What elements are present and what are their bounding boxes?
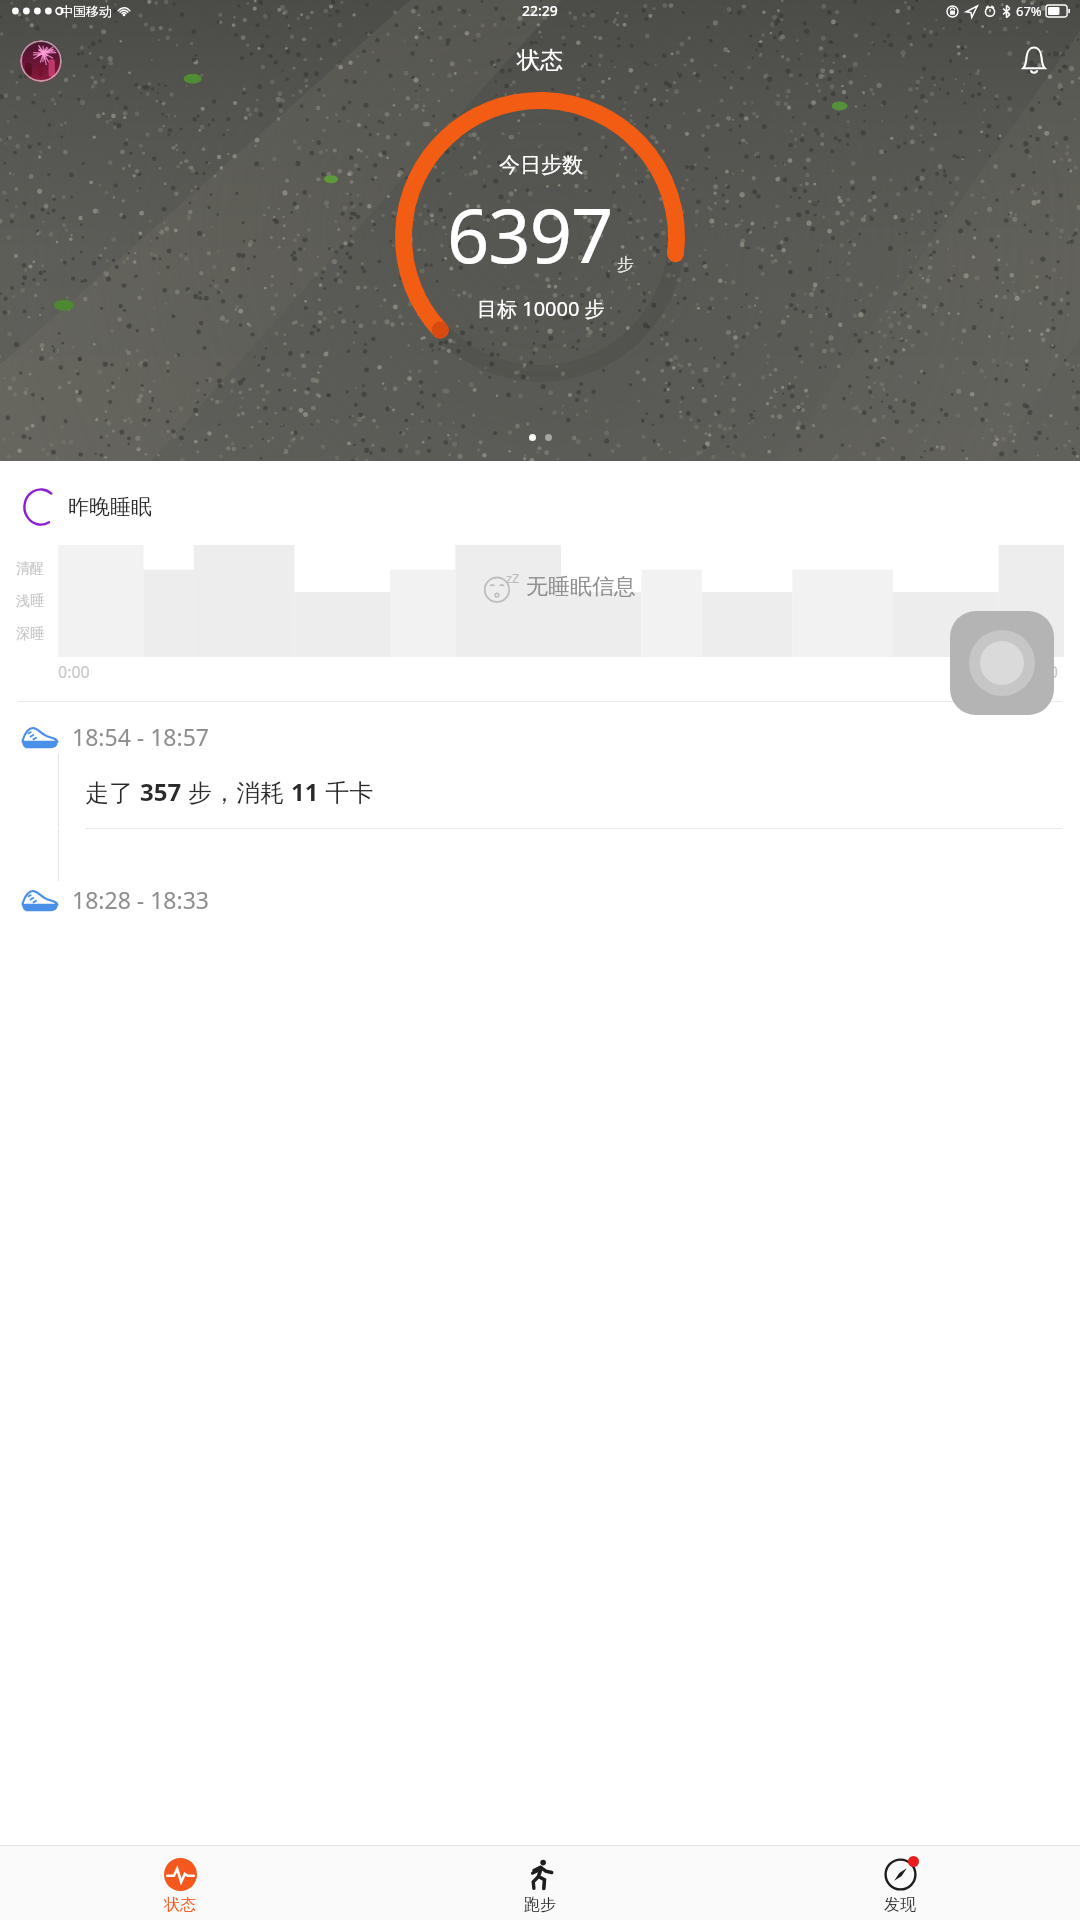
staticText: 步 [617,254,634,275]
staticText: 67% [1016,2,1042,20]
staticText: 6397 [447,184,613,285]
staticText: 22:29 [522,1,558,20]
staticText: 深睡 [16,625,44,643]
staticText: 18:28 - 18:33 [72,884,209,915]
staticText: 0:00 [58,661,90,683]
staticText: 目标 10000 步 [477,295,605,322]
staticText: 12:00 [1017,661,1058,683]
staticText: 清醒 [16,560,44,578]
staticText: 无睡眠信息 [526,573,636,601]
button[interactable]: Profile [20,40,62,82]
staticText: 状态 [517,46,563,75]
staticText: 千卡 [319,775,374,808]
button[interactable]: Notifications [1012,39,1056,83]
button[interactable]: 昨晚睡眠 [0,483,1080,531]
button[interactable]: 发现 [720,1846,1080,1920]
staticText: 中国移动 [60,3,112,19]
button[interactable]: 18:28 - 18:33 [0,829,1080,917]
staticText: 18:54 - 18:57 [72,721,209,752]
button[interactable]: Band [950,611,1054,715]
staticText: 走了 [85,775,140,808]
staticText: 357 [140,775,182,808]
staticText: 步，消耗 [182,775,291,808]
staticText: 11 [291,775,319,808]
staticText: 浅睡 [16,592,44,610]
button[interactable]: 状态 [0,1846,360,1920]
staticText: 状态 [164,1895,196,1915]
button[interactable]: 18:54 - 18:57 [0,702,1080,829]
staticText: zZ [506,569,520,587]
staticText: 发现 [884,1895,916,1915]
button[interactable]: 跑步 [360,1846,720,1920]
staticText: 昨晚睡眠 [68,494,152,520]
staticText: 跑步 [524,1895,556,1915]
staticText: 今日步数 [499,152,583,178]
